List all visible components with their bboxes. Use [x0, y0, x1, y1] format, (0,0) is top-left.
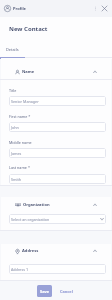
button[interactable]: Profile	[4, 5, 11, 12]
staticText: Address 1	[11, 267, 29, 272]
staticText: Address	[22, 248, 39, 254]
button[interactable]: Collapse Organization	[91, 201, 99, 209]
staticText: Last name *	[9, 165, 30, 170]
staticText: Senior Manager	[11, 99, 39, 104]
staticText: Details	[6, 47, 19, 52]
button[interactable]: Organization	[0, 199, 112, 211]
staticText: Save	[40, 289, 50, 294]
button[interactable]: Smith	[9, 174, 106, 184]
button[interactable]: Details	[4, 44, 21, 54]
staticText: Select an organization	[11, 217, 50, 222]
button[interactable]: Address	[0, 245, 112, 257]
staticText: New Contact	[9, 25, 48, 33]
staticText: Middle name	[9, 140, 32, 145]
button[interactable]: Collapse Address	[91, 247, 99, 255]
button[interactable]: Address 1	[9, 264, 106, 274]
staticText: Smith	[11, 177, 22, 182]
button[interactable]: Cancel	[56, 285, 76, 297]
button[interactable]: Save	[37, 285, 52, 297]
button[interactable]: Select an organization	[9, 214, 106, 224]
staticText: James	[11, 151, 22, 156]
button[interactable]: More options	[91, 4, 100, 13]
staticText: Organization	[23, 202, 50, 208]
button[interactable]: Name	[0, 66, 112, 78]
staticText: Profile	[13, 6, 27, 11]
button[interactable]: James	[9, 148, 106, 158]
button[interactable]: Collapse Name	[91, 68, 99, 76]
button[interactable]: Close	[100, 4, 109, 13]
staticText: First name *	[9, 114, 31, 119]
staticText: Cancel	[60, 289, 73, 294]
button[interactable]: Senior Manager	[9, 96, 106, 106]
staticText: Title	[9, 88, 17, 93]
staticText: Name	[22, 69, 35, 75]
staticText: John	[11, 125, 19, 130]
button[interactable]: John	[9, 122, 106, 132]
